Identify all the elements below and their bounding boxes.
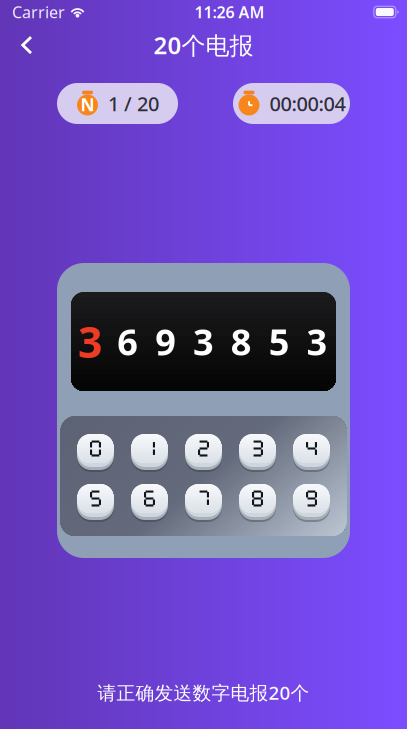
staticText: N (80, 93, 94, 116)
staticText: 8 (231, 318, 252, 365)
button[interactable]: Key 6 (131, 481, 168, 520)
button[interactable]: Back (8, 26, 46, 64)
staticText: 3 (78, 313, 102, 370)
button[interactable]: Key 1 (131, 431, 168, 470)
button[interactable]: Key 5 (77, 481, 114, 520)
button[interactable]: Key 4 (293, 431, 330, 470)
staticText: 3 (307, 318, 328, 365)
button[interactable]: Key 9 (293, 481, 330, 520)
button[interactable]: N (57, 83, 178, 124)
button[interactable]: 00:00:04 (233, 83, 350, 124)
staticText: Carrier (12, 1, 65, 23)
button[interactable]: Key 8 (239, 481, 276, 520)
button[interactable]: Key 7 (185, 481, 222, 520)
button[interactable]: Key 0 (77, 431, 114, 470)
staticText: 3 (193, 318, 214, 365)
staticText: 00:00:04 (269, 90, 345, 117)
button[interactable]: Key 3 (239, 431, 276, 470)
button[interactable]: Key 2 (185, 431, 222, 470)
staticText: 6 (117, 318, 138, 365)
staticText: 5 (269, 318, 290, 365)
staticText: 20个电报 (153, 29, 253, 61)
staticText: 11:26 AM (194, 1, 264, 23)
staticText: 请正确发送数字电报20个 (97, 680, 309, 705)
staticText: 1 / 20 (108, 90, 159, 117)
staticText: 9 (155, 318, 176, 365)
